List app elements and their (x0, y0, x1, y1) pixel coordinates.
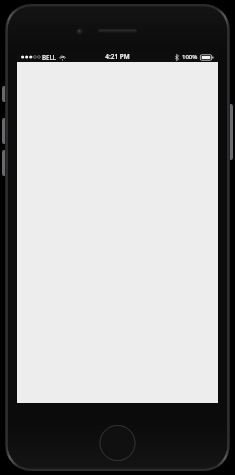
staticText: 100% (182, 53, 198, 61)
staticText: 4:21 PM (105, 52, 130, 61)
staticText: BELL (42, 53, 57, 61)
